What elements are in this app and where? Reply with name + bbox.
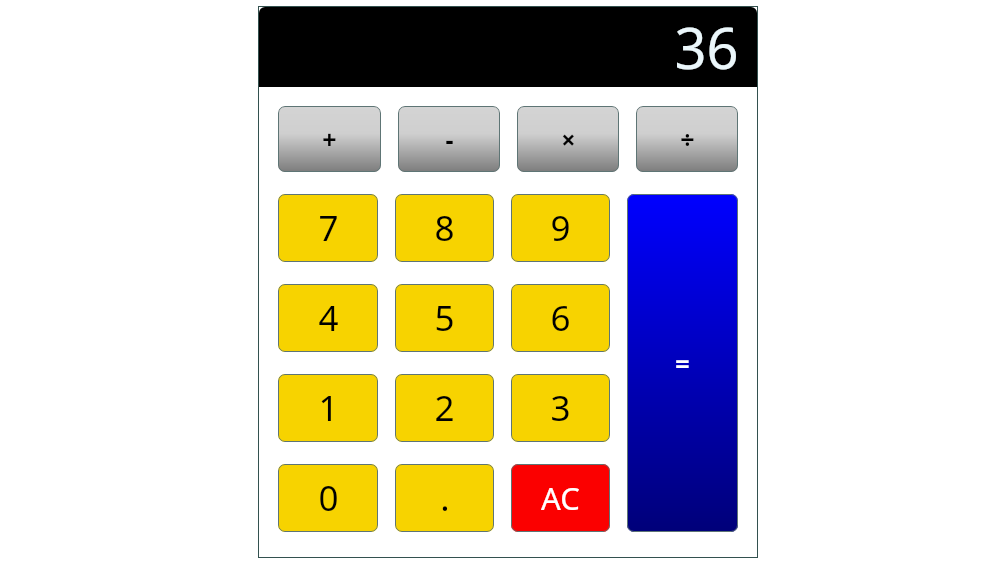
button[interactable]: 2 <box>395 374 494 442</box>
button[interactable]: 8 <box>395 194 494 262</box>
staticText: 2 <box>434 384 455 432</box>
button[interactable]: Decimal point <box>395 464 494 532</box>
button[interactable]: Divide <box>636 106 738 172</box>
button[interactable]: 0 <box>278 464 378 532</box>
button[interactable]: Multiply <box>517 106 619 172</box>
staticText: ÷ <box>680 122 695 156</box>
staticText: 0 <box>318 474 339 522</box>
staticText: = <box>675 346 690 380</box>
button[interactable]: Plus <box>278 106 381 172</box>
button[interactable]: 6 <box>511 284 610 352</box>
button[interactable]: 7 <box>278 194 378 262</box>
button[interactable]: AC <box>511 464 610 532</box>
button[interactable]: 9 <box>511 194 610 262</box>
button[interactable]: Equals <box>627 194 738 532</box>
staticText: 7 <box>318 204 339 252</box>
staticText: 3 <box>550 384 571 432</box>
button[interactable]: 4 <box>278 284 378 352</box>
staticText: 6 <box>550 294 571 342</box>
button[interactable]: 5 <box>395 284 494 352</box>
staticText: 4 <box>318 294 339 342</box>
staticText: 5 <box>434 294 455 342</box>
staticText: 9 <box>550 204 571 252</box>
staticText: . <box>440 474 450 522</box>
staticText: 8 <box>434 204 455 252</box>
button[interactable]: Minus <box>398 106 500 172</box>
staticText: 36 <box>674 9 739 85</box>
staticText: + <box>322 122 337 156</box>
staticText: 1 <box>318 384 339 432</box>
button[interactable]: 3 <box>511 374 610 442</box>
staticText: AC <box>541 477 580 519</box>
staticText: × <box>561 122 576 156</box>
staticText: - <box>445 122 454 156</box>
button[interactable]: 1 <box>278 374 378 442</box>
